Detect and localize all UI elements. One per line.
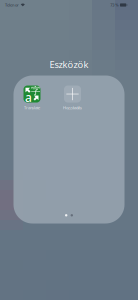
- staticText: Hozzáadás: [63, 105, 82, 110]
- staticText: 字: [31, 85, 40, 96]
- button[interactable]: Hozzáadás: [55, 84, 89, 112]
- staticText: Eszközök: [49, 58, 88, 71]
- staticText: Telenor: [5, 2, 19, 8]
- button[interactable]: 字: [15, 84, 49, 112]
- staticText: Translate: [24, 105, 40, 110]
- staticText: a: [25, 89, 32, 105]
- staticText: 73 %: [110, 2, 118, 8]
